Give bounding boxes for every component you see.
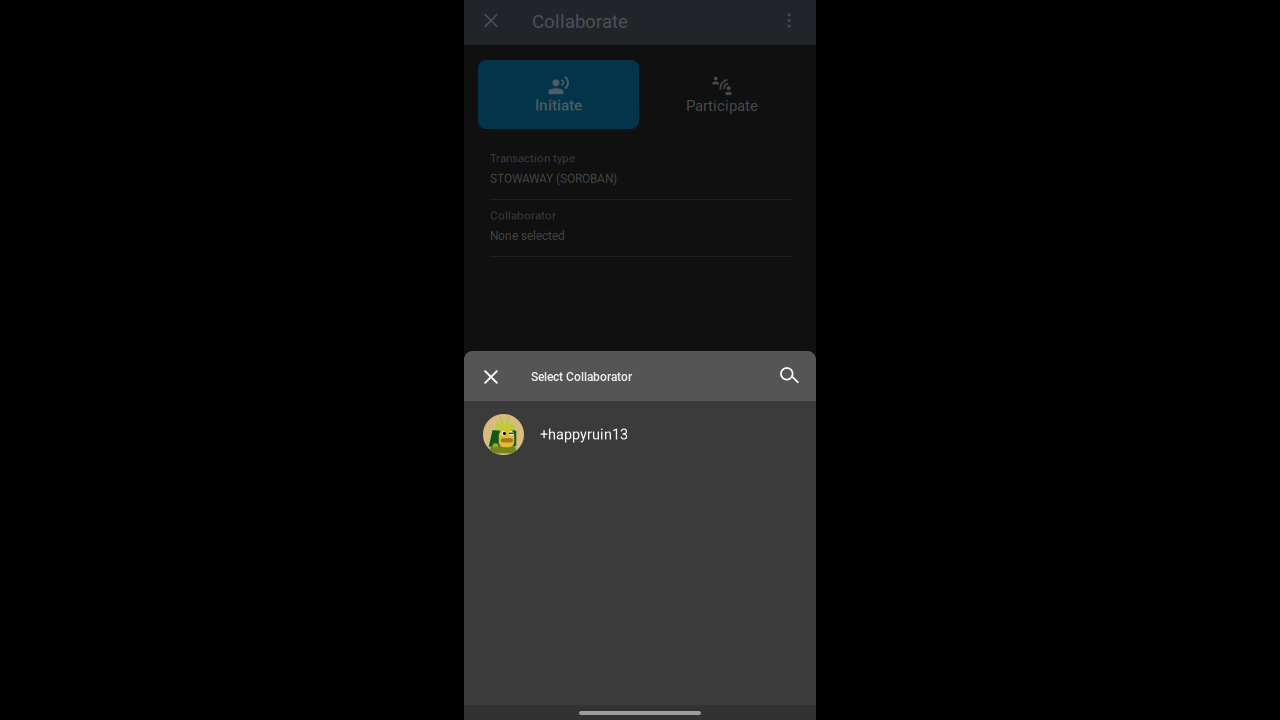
staticText: Participate bbox=[686, 97, 758, 115]
button[interactable]: More options bbox=[767, 0, 811, 43]
button[interactable]: Close bbox=[468, 352, 514, 402]
button[interactable]: Initiate bbox=[478, 60, 639, 129]
staticText: Select Collaborator bbox=[531, 370, 632, 384]
staticText: None selected bbox=[490, 229, 565, 243]
button[interactable]: Participate bbox=[642, 60, 802, 129]
button[interactable]: Close bbox=[468, 0, 514, 43]
staticText: STOWAWAY (SOROBAN) bbox=[490, 172, 617, 186]
staticText: +happyruin13 bbox=[540, 426, 628, 443]
staticText: Collaborator bbox=[490, 209, 556, 222]
staticText: Initiate bbox=[535, 96, 582, 114]
staticText: Collaborate bbox=[532, 11, 628, 32]
button[interactable]: Search bbox=[767, 351, 811, 401]
staticText: Transaction type bbox=[490, 152, 575, 165]
button[interactable]: +happyruin13 bbox=[464, 401, 816, 468]
